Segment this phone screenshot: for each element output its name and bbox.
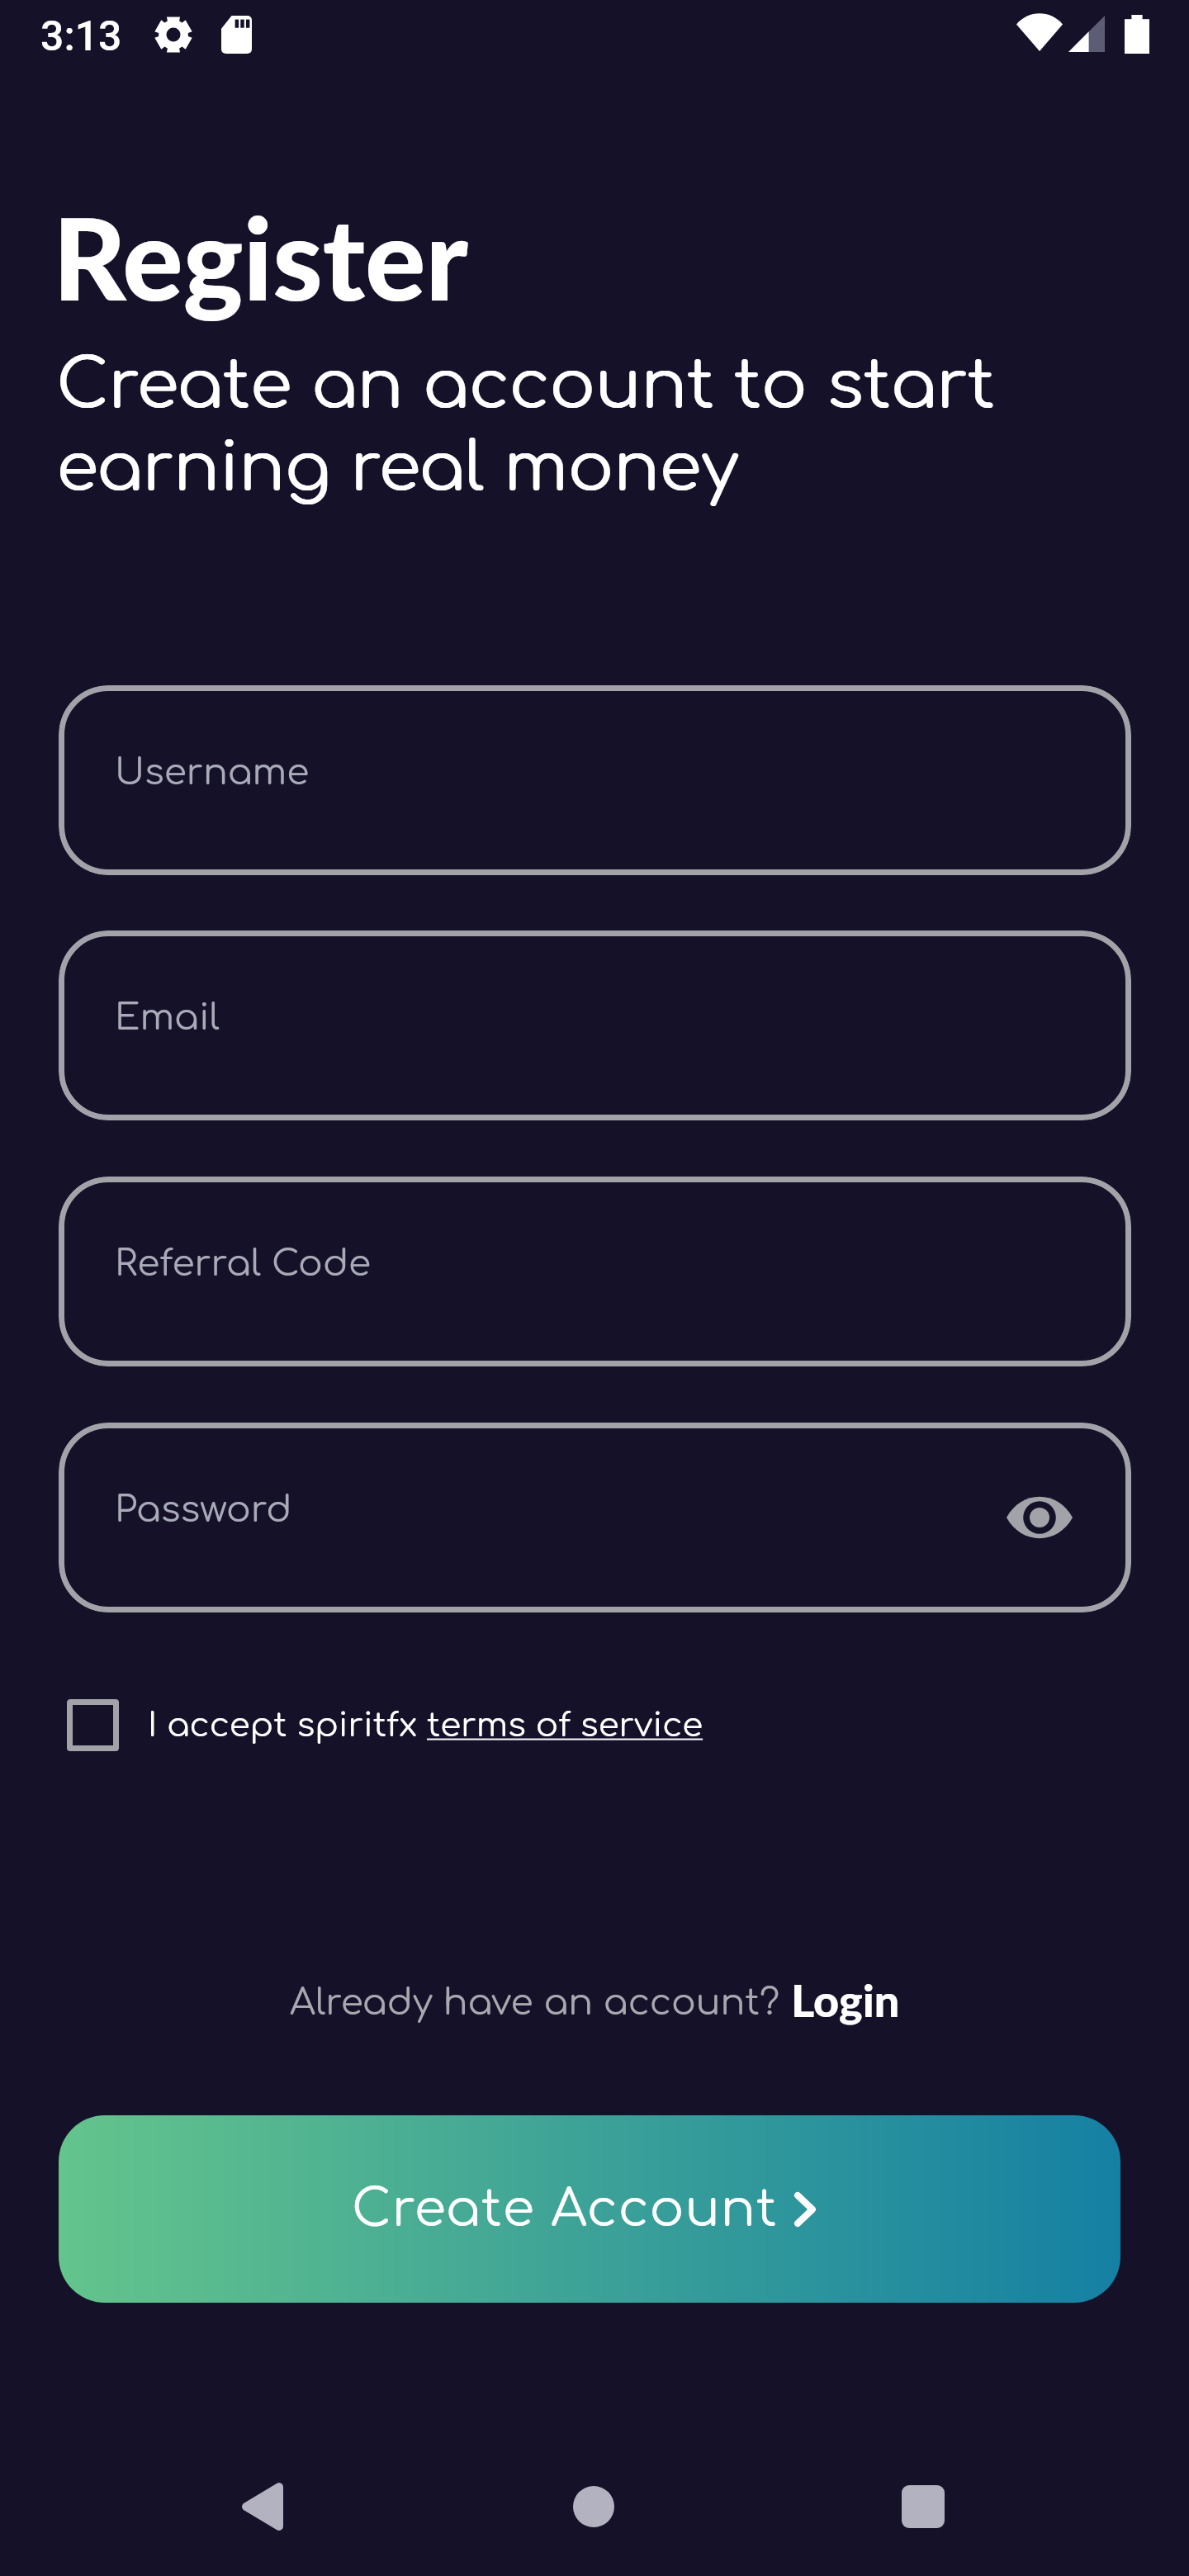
staticText: 3:13	[40, 12, 122, 61]
staticText: Create an account to start earning real …	[56, 348, 995, 506]
staticText: Referral Code	[115, 1243, 372, 1284]
staticText: Username	[115, 752, 310, 793]
button[interactable]: Home	[552, 2465, 635, 2548]
staticText: I accept spiritfx	[148, 1707, 427, 1744]
button[interactable]: Password	[59, 1423, 1131, 1612]
staticText: Email	[115, 997, 220, 1038]
staticText: Password	[115, 1489, 292, 1530]
staticText: Login	[791, 1973, 900, 2027]
staticText: terms of service	[427, 1707, 703, 1744]
staticText: Register	[53, 189, 468, 324]
button[interactable]: Create Account	[59, 2115, 1120, 2303]
button[interactable]: Recent apps	[882, 2465, 964, 2548]
staticText: Already have an account?	[290, 1982, 791, 2023]
button[interactable]: I accept spiritfx	[48, 1678, 703, 1773]
button[interactable]: Username	[59, 685, 1131, 875]
button[interactable]: Show password	[994, 1472, 1085, 1563]
button[interactable]: Email	[59, 930, 1131, 1120]
staticText: Create Account	[352, 2181, 778, 2237]
button[interactable]: Already have an account?	[290, 1982, 900, 2036]
button[interactable]: Referral Code	[59, 1177, 1131, 1366]
button[interactable]: Back	[221, 2465, 304, 2548]
staticText: Create an account to start earning real …	[57, 348, 996, 506]
